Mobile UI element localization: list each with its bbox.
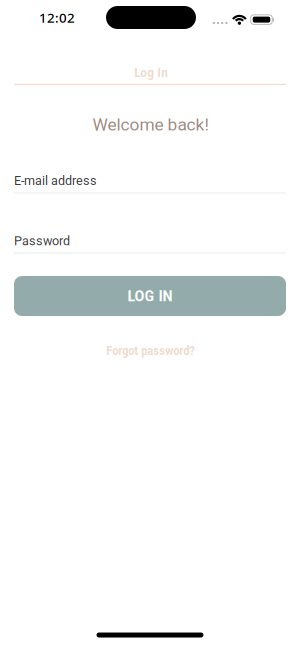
staticText: LOG IN	[127, 287, 172, 305]
staticText: Log In	[134, 65, 168, 80]
button[interactable]: E-mail address	[14, 162, 286, 196]
staticText: Forgot password?	[106, 344, 195, 358]
button[interactable]: Forgot password?	[106, 344, 195, 358]
staticText: 12:02	[39, 9, 75, 26]
staticText: E-mail address	[14, 173, 97, 188]
button[interactable]: Password	[14, 222, 286, 256]
button[interactable]: LOG IN	[14, 276, 286, 316]
staticText: Welcome back!	[93, 114, 209, 135]
staticText: Password	[14, 234, 70, 248]
